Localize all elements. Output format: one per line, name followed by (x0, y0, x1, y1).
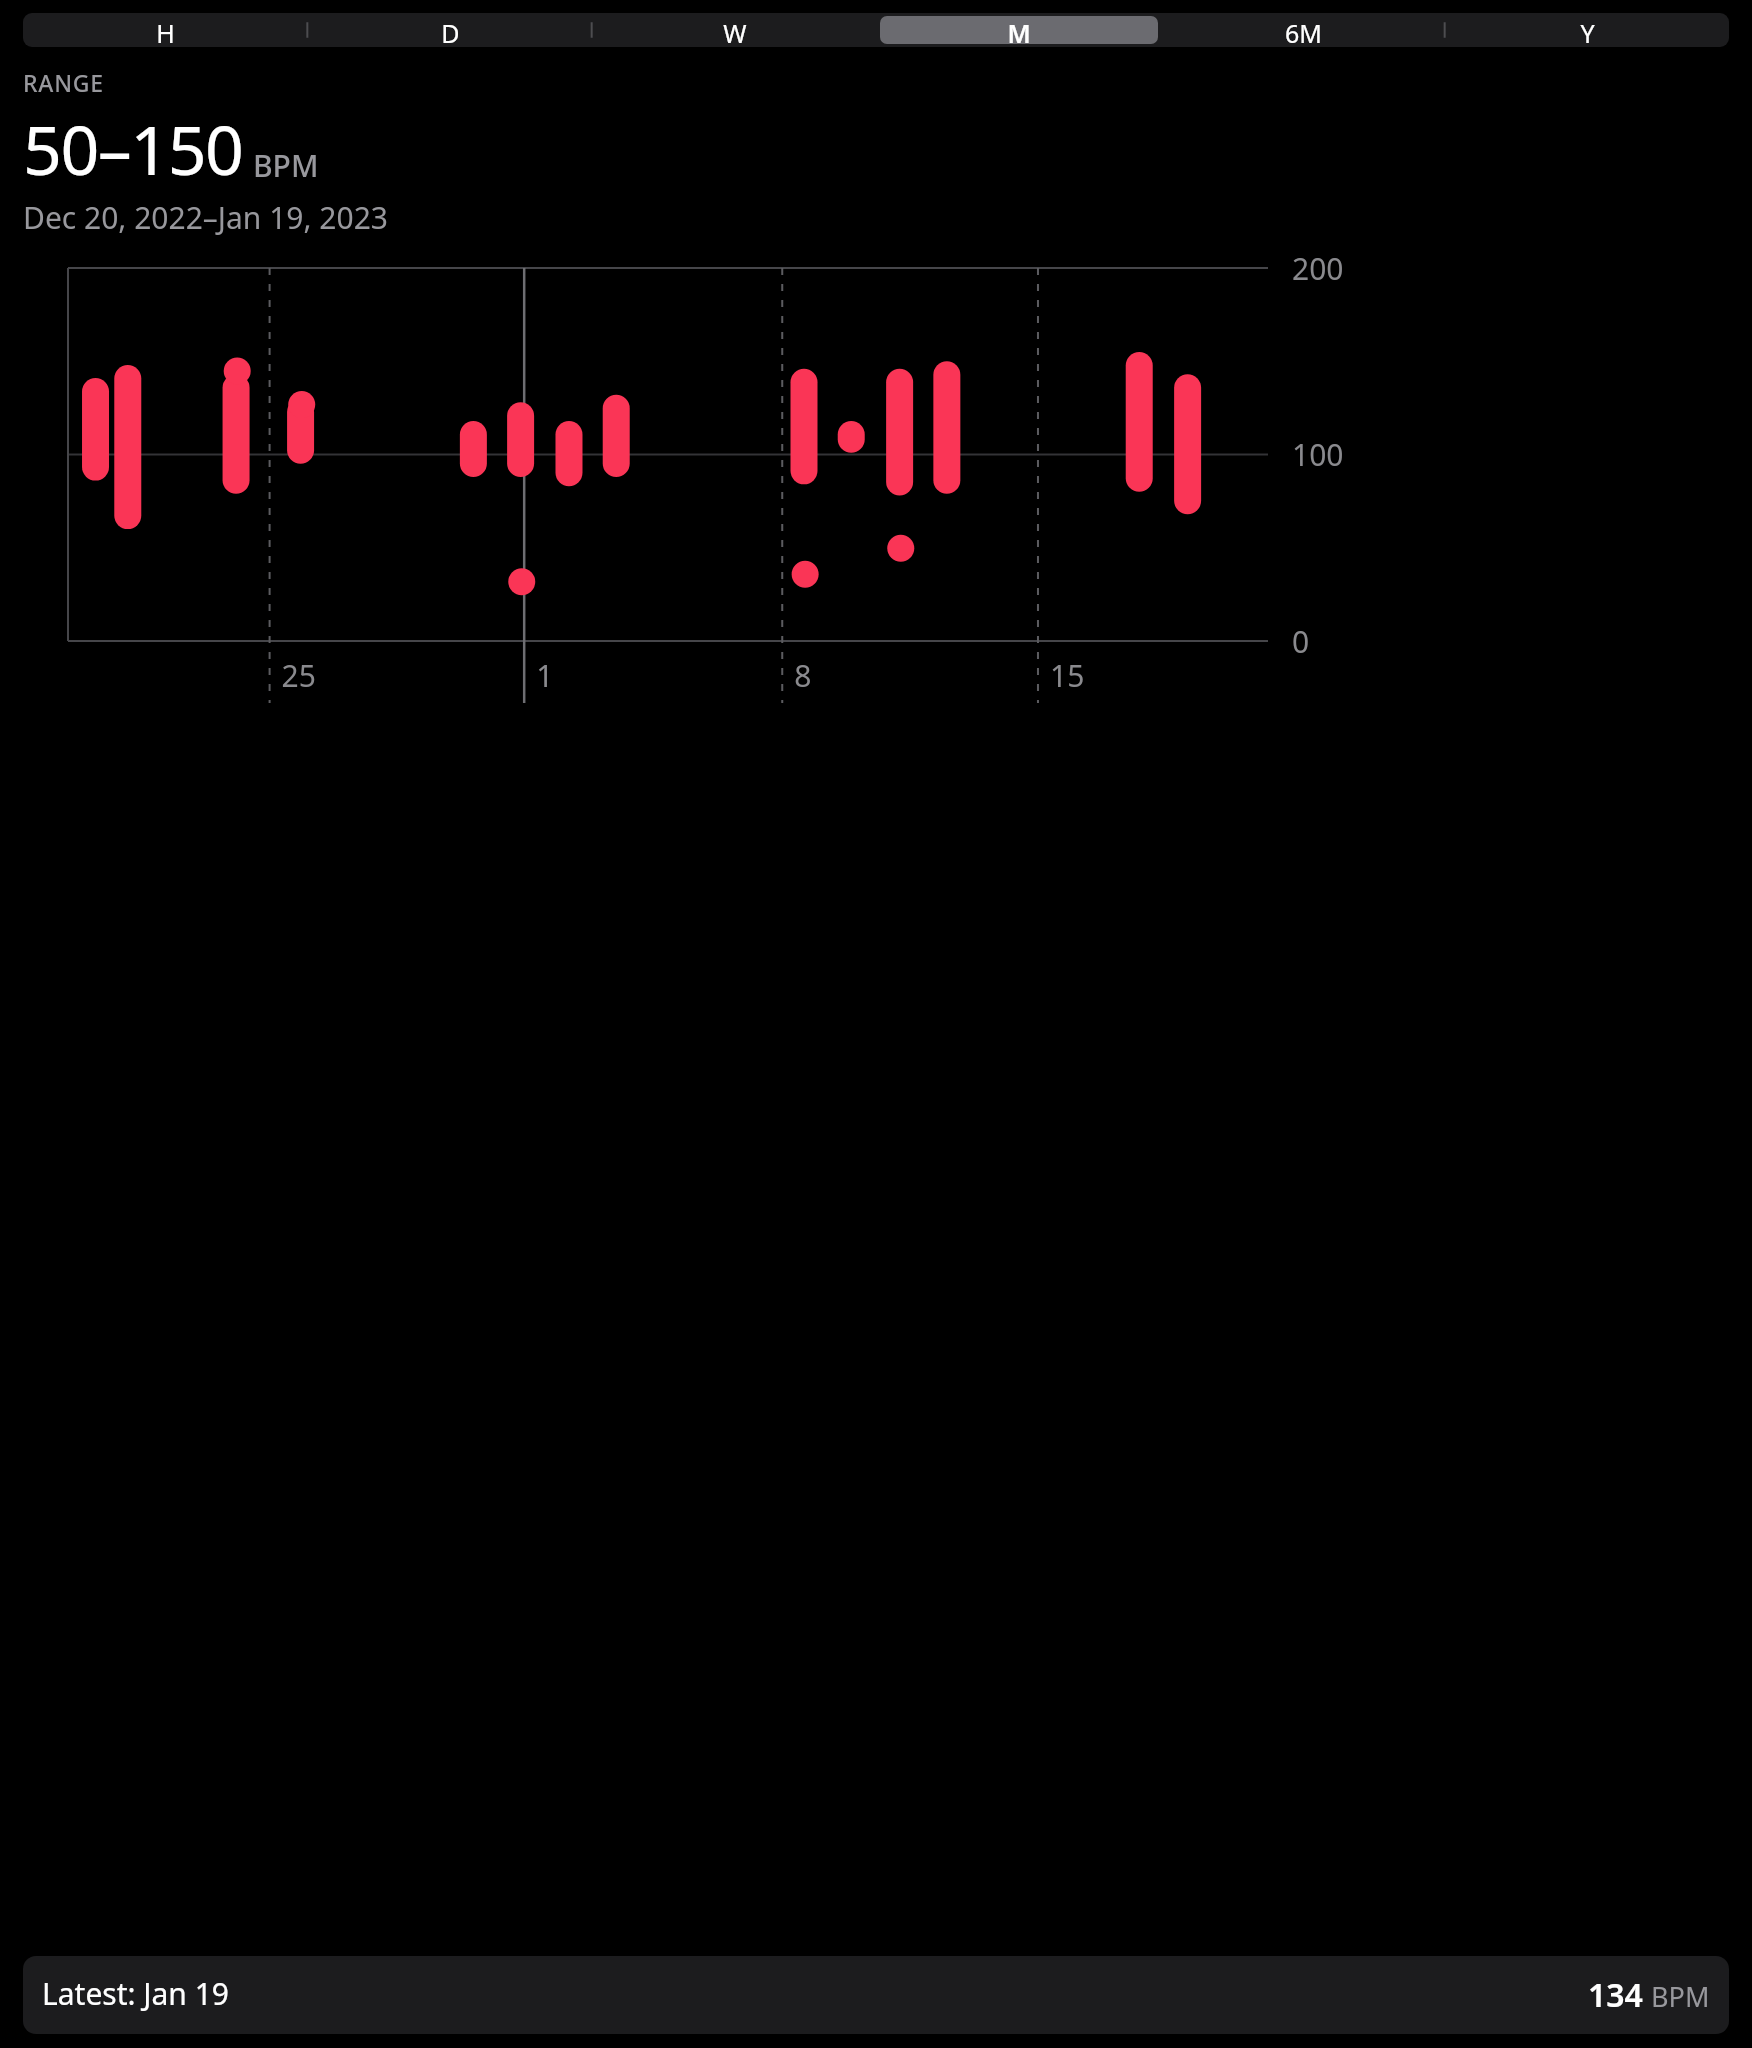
staticText: H (156, 16, 175, 44)
staticText: BPM (253, 145, 319, 186)
button[interactable]: 6M (1164, 16, 1442, 44)
button[interactable]: Latest: Jan 19 (23, 1956, 1729, 2034)
button[interactable]: Y (1448, 16, 1726, 44)
button[interactable]: H (26, 16, 305, 44)
staticText: BPM (1651, 1978, 1710, 2015)
staticText: RANGE (23, 67, 104, 98)
staticText: Dec 20, 2022–Jan 19, 2023 (23, 197, 388, 238)
staticText: W (723, 16, 747, 44)
button[interactable]: M (880, 16, 1158, 44)
staticText: D (441, 16, 460, 44)
button[interactable]: D (311, 16, 590, 44)
staticText: Latest: Jan 19 (42, 1973, 230, 2014)
staticText: Y (1580, 16, 1595, 44)
staticText: 6M (1285, 16, 1322, 44)
staticText: 50–150 (23, 102, 243, 195)
staticText: 134 (1588, 1973, 1643, 2017)
staticText: M (1007, 16, 1031, 44)
button[interactable]: W (596, 16, 874, 44)
